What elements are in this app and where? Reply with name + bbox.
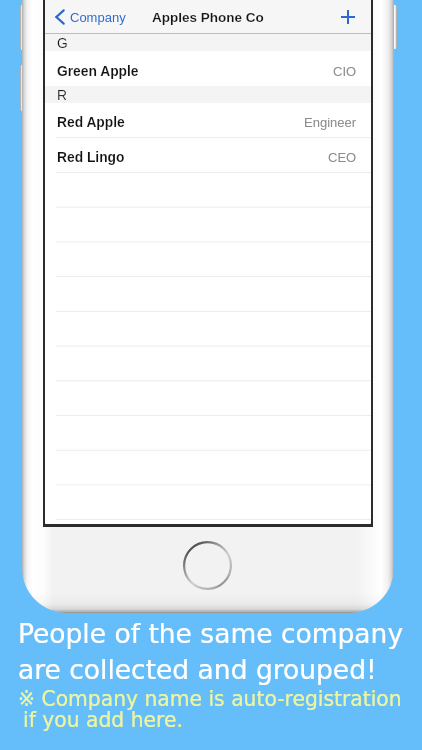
staticText: Apples Phone Co	[152, 10, 264, 25]
staticText: Company	[70, 10, 126, 25]
button[interactable]: Company	[45, 0, 134, 34]
staticText: G	[57, 36, 68, 51]
button[interactable]: Add	[331, 0, 365, 34]
staticText: ※ Company name is auto-registration	[18, 687, 402, 711]
staticText: CIO	[333, 64, 357, 79]
button[interactable]: Green Apple	[45, 52, 371, 87]
staticText: if you add here.	[23, 708, 183, 732]
staticText: Red Apple	[57, 115, 125, 130]
staticText: R	[57, 88, 67, 103]
staticText: Green Apple	[57, 64, 139, 79]
staticText: People of the same company	[18, 618, 404, 649]
button[interactable]: Red Apple	[45, 103, 371, 138]
button[interactable]: Red Lingo	[45, 138, 371, 173]
staticText: are collected and grouped!	[18, 654, 377, 685]
staticText: Engineer	[304, 115, 357, 130]
staticText: Red Lingo	[57, 150, 125, 165]
staticText: CEO	[328, 150, 357, 165]
